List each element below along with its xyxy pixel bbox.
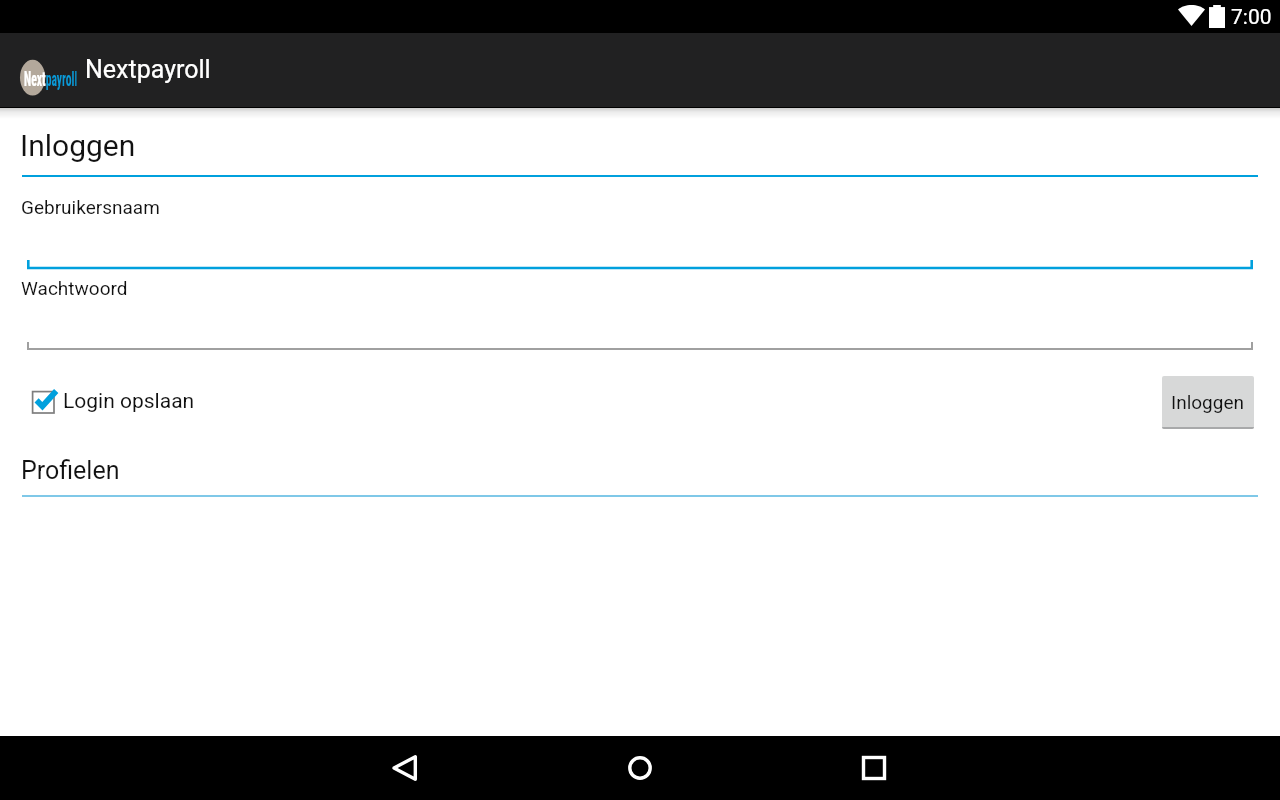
button[interactable]: Recent apps [838,736,910,800]
staticText: 7:00 [1231,5,1272,30]
button[interactable]: Home [604,736,676,800]
button[interactable]: Gebruikersnaam invoerveld [22,224,1254,270]
staticText: Inloggen [20,128,136,163]
staticText: Gebruikersnaam [21,196,160,218]
staticText: Wachtwoord [21,277,128,299]
button[interactable]: Inloggen [1162,376,1254,429]
other: Battery full [1209,5,1225,28]
other: Wi-Fi [1178,5,1205,26]
other: Nextpayroll logo [20,59,110,95]
staticText: Inloggen [1171,391,1245,413]
button[interactable]: Nextpayroll logo [12,33,222,107]
staticText: Next [24,66,46,90]
staticText: Login opslaan [63,389,195,414]
staticText: payroll [46,66,77,90]
button[interactable]: Wachtwoord invoerveld [22,305,1254,351]
button[interactable]: Login opslaan [28,384,194,416]
staticText: Nextpayroll [85,55,211,84]
staticText: Profielen [21,456,120,485]
button[interactable]: Back [369,736,441,800]
